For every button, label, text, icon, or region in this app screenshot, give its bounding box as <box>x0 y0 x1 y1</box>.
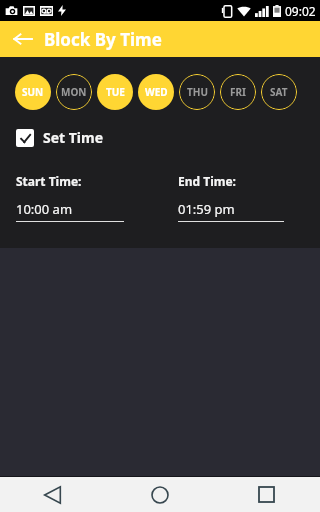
button[interactable]: WED <box>138 74 174 110</box>
staticText: FRI <box>230 85 246 99</box>
button[interactable]: THU <box>179 74 215 110</box>
staticText: 01:59 pm <box>178 200 235 218</box>
button[interactable]: Back <box>0 477 106 512</box>
button[interactable]: SUN <box>15 74 51 110</box>
staticText: SAT <box>270 85 288 99</box>
staticText: WED <box>145 85 168 99</box>
staticText: 09:02 <box>285 3 316 19</box>
staticText: End Time: <box>178 173 236 189</box>
button[interactable]: 01:59 pm <box>178 200 284 222</box>
button[interactable]: 10:00 am <box>16 200 124 222</box>
button[interactable]: Back <box>9 25 37 53</box>
staticText: SUN <box>22 85 44 99</box>
button[interactable]: Set Time <box>16 128 104 147</box>
staticText: MON <box>61 85 87 99</box>
button[interactable]: SAT <box>261 74 297 110</box>
button[interactable]: MON <box>56 74 92 110</box>
staticText: THU <box>187 85 208 99</box>
button[interactable]: Recent apps <box>213 477 320 512</box>
button[interactable]: TUE <box>97 74 133 110</box>
staticText: 10:00 am <box>16 200 73 218</box>
staticText: Set Time <box>43 128 104 147</box>
staticText: Block By Time <box>44 28 162 51</box>
staticText: TUE <box>106 85 125 99</box>
staticText: Start Time: <box>16 173 82 189</box>
button[interactable]: Home <box>106 477 213 512</box>
button[interactable]: FRI <box>220 74 256 110</box>
